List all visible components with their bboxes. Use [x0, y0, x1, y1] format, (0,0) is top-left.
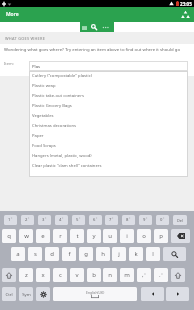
- button[interactable]: e: [36, 229, 50, 243]
- button[interactable]: Plastic wrap: [29, 81, 188, 91]
- staticText: 4: [59, 217, 62, 223]
- button[interactable]: Calendar: [82, 25, 87, 30]
- staticText: °: [96, 217, 98, 221]
- button[interactable]: search: [163, 247, 186, 261]
- button[interactable]: g: [79, 247, 93, 261]
- staticText: i: [126, 232, 128, 240]
- staticText: x: [41, 271, 45, 279]
- staticText: k: [134, 250, 138, 258]
- button[interactable]: 7: [105, 215, 118, 225]
- button[interactable]: c: [53, 268, 67, 282]
- button[interactable]: a: [11, 247, 25, 261]
- button[interactable]: p: [154, 229, 168, 243]
- staticText: °: [161, 271, 163, 277]
- staticText: 23:05: [180, 1, 192, 7]
- button[interactable]: Recycling: [179, 9, 191, 21]
- button[interactable]: q: [2, 229, 16, 243]
- button[interactable]: 5: [72, 215, 85, 225]
- staticText: °: [28, 217, 30, 221]
- staticText: r: [59, 232, 62, 240]
- button[interactable]: m: [120, 268, 134, 282]
- button[interactable]: l: [146, 247, 160, 261]
- button[interactable]: Plastic Grocery Bags: [29, 101, 188, 111]
- button[interactable]: left: [141, 287, 164, 301]
- button[interactable]: .: [154, 268, 168, 282]
- button[interactable]: Cutlery ("compostable" plastic): [29, 71, 188, 81]
- button[interactable]: gear: [36, 287, 50, 301]
- staticText: Vegetables: [32, 113, 54, 119]
- button[interactable]: h: [96, 247, 110, 261]
- button[interactable]: 4: [55, 215, 68, 225]
- button[interactable]: Christmas decorations: [29, 121, 188, 131]
- staticText: j: [118, 250, 120, 258]
- staticText: Plastic wrap: [32, 83, 56, 89]
- button[interactable]: Hangers (metal, plastic, wood): [29, 151, 188, 161]
- staticText: e: [41, 232, 45, 240]
- staticText: °: [11, 217, 13, 221]
- button[interactable]: backspace: [171, 229, 190, 243]
- staticText: .: [159, 271, 161, 279]
- staticText: f: [68, 250, 71, 258]
- staticText: v: [75, 271, 79, 279]
- staticText: Clear plastic "clam shell" containers: [32, 163, 102, 169]
- button[interactable]: w: [19, 229, 33, 243]
- button[interactable]: n: [103, 268, 117, 282]
- button[interactable]: f: [62, 247, 76, 261]
- staticText: °: [146, 217, 148, 221]
- button[interactable]: i: [120, 229, 134, 243]
- staticText: Del: [177, 218, 183, 223]
- button[interactable]: 8: [122, 215, 135, 225]
- button[interactable]: right: [166, 287, 189, 301]
- staticText: Plas: [32, 63, 41, 69]
- staticText: English(UK): [86, 290, 105, 295]
- button[interactable]: r: [53, 229, 67, 243]
- button[interactable]: Del: [173, 215, 187, 225]
- button[interactable]: 0: [156, 215, 169, 225]
- button[interactable]: 3: [38, 215, 51, 225]
- button[interactable]: 2: [21, 215, 34, 225]
- button[interactable]: Search: [91, 24, 97, 30]
- button[interactable]: y: [87, 229, 101, 243]
- staticText: s: [34, 250, 37, 258]
- button[interactable]: v: [70, 268, 84, 282]
- staticText: WHAT GOES WHERE: [5, 36, 46, 41]
- button[interactable]: 1: [4, 215, 17, 225]
- button[interactable]: 6: [89, 215, 102, 225]
- staticText: d: [50, 250, 54, 258]
- staticText: g: [84, 250, 88, 258]
- staticText: n: [108, 271, 112, 279]
- staticText: °: [163, 217, 165, 221]
- button[interactable]: Plastic take-out containers: [29, 91, 188, 101]
- button[interactable]: Paper: [29, 131, 188, 141]
- staticText: z: [25, 271, 28, 279]
- button[interactable]: Clear plastic "clam shell" containers: [29, 161, 188, 171]
- button[interactable]: shift: [2, 268, 16, 282]
- staticText: q: [7, 232, 11, 240]
- staticText: °: [45, 217, 47, 221]
- staticText: w: [24, 232, 29, 240]
- button[interactable]: More options: [102, 24, 110, 32]
- button[interactable]: z: [19, 268, 33, 282]
- button[interactable]: j: [112, 247, 126, 261]
- button[interactable]: Vegetables: [29, 111, 188, 121]
- button[interactable]: 9: [139, 215, 152, 225]
- button[interactable]: d: [45, 247, 59, 261]
- button[interactable]: Food Scraps: [29, 141, 188, 151]
- button[interactable]: Ctrl: [2, 287, 16, 301]
- button[interactable]: ,: [137, 268, 151, 282]
- button[interactable]: shift: [171, 268, 185, 282]
- staticText: y: [92, 232, 96, 240]
- button[interactable]: u: [103, 229, 117, 243]
- button[interactable]: b: [87, 268, 101, 282]
- button[interactable]: t: [70, 229, 84, 243]
- staticText: b: [92, 271, 96, 279]
- button[interactable]: s: [28, 247, 42, 261]
- staticText: m: [124, 271, 130, 279]
- button[interactable]: x: [36, 268, 50, 282]
- button[interactable]: Sym: [19, 287, 33, 301]
- button[interactable]: English(UK): [53, 287, 137, 301]
- staticText: a: [16, 250, 20, 258]
- button[interactable]: o: [137, 229, 151, 243]
- button[interactable]: k: [129, 247, 143, 261]
- staticText: 2: [25, 217, 28, 223]
